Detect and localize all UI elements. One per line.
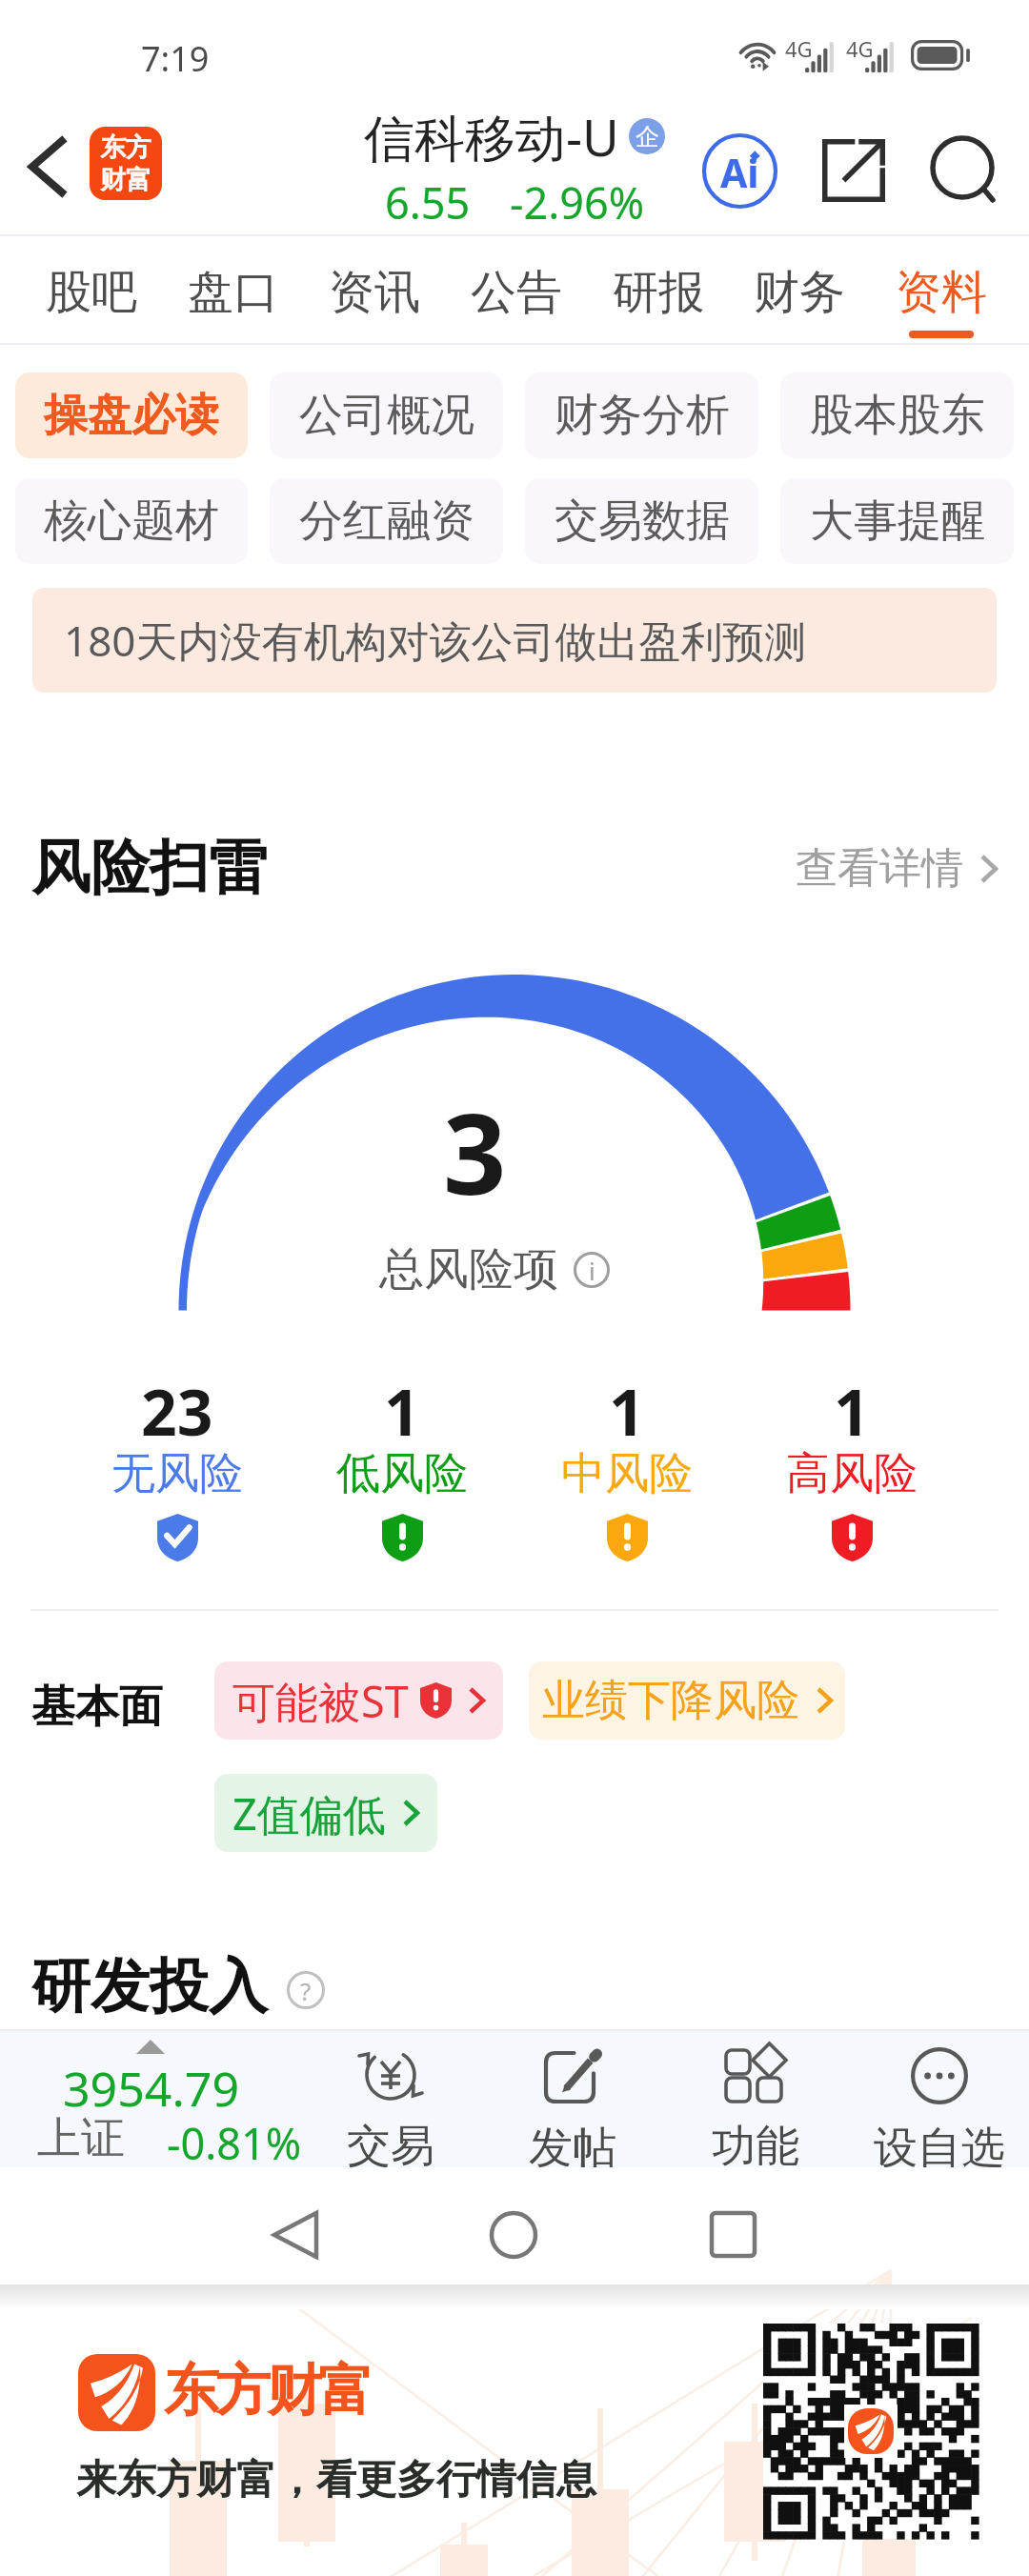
- button[interactable]: 可能被ST: [214, 1661, 503, 1740]
- button[interactable]: 1: [514, 1368, 739, 1568]
- button[interactable]: Back: [6, 107, 88, 234]
- staticText: 财务分析: [555, 388, 730, 443]
- staticText: 风险扫雷: [31, 831, 268, 905]
- staticText: 1: [609, 1368, 645, 1454]
- staticText: 公告: [471, 264, 562, 321]
- button[interactable]: 股本股东: [780, 372, 1014, 458]
- staticText: 可能被ST: [232, 1672, 409, 1730]
- button[interactable]: 盘口: [175, 234, 292, 345]
- staticText: 资讯: [329, 264, 420, 321]
- button[interactable]: 操盘必读: [15, 372, 248, 458]
- staticText: 1: [834, 1368, 870, 1454]
- button[interactable]: 180天内没有机构对该公司做出盈利预测: [32, 588, 997, 693]
- staticText: 财务: [754, 264, 845, 321]
- button[interactable]: Search: [899, 107, 1029, 234]
- button[interactable]: Share: [789, 107, 918, 234]
- staticText: 4G: [785, 34, 813, 63]
- staticText: 23: [141, 1368, 213, 1454]
- staticText: 企: [636, 122, 659, 151]
- staticText: Ai: [720, 146, 759, 199]
- button[interactable]: 23: [65, 1368, 290, 1568]
- button[interactable]: Home: [428, 2178, 599, 2292]
- staticText: 业绩下降风险: [542, 1674, 799, 1728]
- staticText: -2.96%: [510, 173, 645, 231]
- button[interactable]: 1: [290, 1368, 514, 1568]
- button[interactable]: 发帖: [487, 2029, 658, 2167]
- staticText: -0.81%: [167, 2114, 302, 2172]
- staticText: 大事提醒: [810, 493, 985, 549]
- button[interactable]: 业绩下降风险: [529, 1661, 845, 1740]
- button[interactable]: Back: [210, 2178, 381, 2292]
- button[interactable]: 财务分析: [525, 372, 758, 458]
- staticText: 3954.79: [63, 2056, 239, 2121]
- staticText: 高风险: [786, 1446, 918, 1501]
- staticText: 研发投入: [31, 1949, 268, 2023]
- staticText: 查看详情: [796, 842, 963, 895]
- staticText: 4G: [846, 34, 874, 63]
- button[interactable]: 资料: [883, 234, 999, 345]
- staticText: 7:19: [141, 35, 210, 82]
- staticText: 交易: [347, 2119, 434, 2167]
- button[interactable]: 功能: [670, 2029, 841, 2167]
- staticText: 资料: [896, 264, 987, 321]
- staticText: 研报: [613, 264, 704, 321]
- staticText: ?: [300, 1974, 312, 2007]
- staticText: 无风险: [111, 1446, 243, 1501]
- button[interactable]: 设自选: [854, 2029, 1025, 2167]
- button[interactable]: 公司概况: [270, 372, 503, 458]
- button[interactable]: 公告: [458, 234, 575, 345]
- staticText: 发帖: [529, 2121, 616, 2167]
- staticText: 操盘必读: [44, 388, 219, 443]
- staticText: i: [589, 1254, 595, 1287]
- button[interactable]: 交易数据: [525, 478, 758, 564]
- staticText: Z值偏低: [232, 1784, 386, 1842]
- staticText: 上证: [37, 2111, 125, 2166]
- staticText: 财富: [100, 164, 151, 196]
- staticText: 东方: [100, 131, 151, 164]
- staticText: 核心题材: [44, 493, 219, 549]
- button[interactable]: 交易: [305, 2029, 476, 2167]
- button[interactable]: 核心题材: [15, 478, 248, 564]
- staticText: 信科移动-U: [364, 102, 619, 171]
- staticText: 180天内没有机构对该公司做出盈利预测: [64, 612, 807, 669]
- button[interactable]: 资讯: [316, 234, 433, 345]
- button[interactable]: 查看详情: [796, 842, 998, 895]
- button[interactable]: 分红融资: [270, 478, 503, 564]
- button[interactable]: 财务: [741, 234, 857, 345]
- staticText: 总风险项: [379, 1241, 558, 1298]
- staticText: 基本面: [31, 1680, 163, 1735]
- staticText: 东方财富: [166, 2356, 372, 2425]
- staticText: 股本股东: [810, 388, 985, 443]
- button[interactable]: 3954.79: [0, 2029, 324, 2167]
- staticText: 低风险: [336, 1446, 468, 1501]
- button[interactable]: 大事提醒: [780, 478, 1014, 564]
- staticText: 分红融资: [299, 493, 474, 549]
- staticText: 6.55: [385, 173, 471, 231]
- button[interactable]: 股吧: [33, 234, 150, 345]
- button[interactable]: AI assistant: [673, 107, 806, 234]
- staticText: 股吧: [46, 264, 137, 321]
- staticText: 公司概况: [299, 388, 474, 443]
- staticText: 设自选: [874, 2121, 1005, 2167]
- button[interactable]: 研报: [600, 234, 716, 345]
- staticText: 3: [443, 1077, 507, 1227]
- staticText: 交易数据: [555, 493, 730, 549]
- button[interactable]: 1: [739, 1368, 964, 1568]
- button[interactable]: 东方: [90, 127, 162, 200]
- staticText: 来东方财富，看更多行情信息: [76, 2455, 596, 2506]
- staticText: 中风险: [561, 1446, 693, 1501]
- staticText: 功能: [712, 2119, 799, 2167]
- button[interactable]: Recent apps: [648, 2178, 819, 2292]
- staticText: 盘口: [188, 264, 279, 321]
- staticText: 1: [384, 1368, 420, 1454]
- button[interactable]: Z值偏低: [214, 1774, 437, 1852]
